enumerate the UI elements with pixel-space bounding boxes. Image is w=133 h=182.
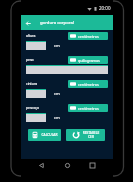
button[interactable]: centímetros <box>68 104 108 112</box>
button[interactable]: Home <box>62 160 73 171</box>
button[interactable]: Recents <box>87 160 98 171</box>
button[interactable]: quilogramas <box>68 56 108 64</box>
staticText: gordura corporal <box>40 20 74 26</box>
staticText: centímetros <box>78 82 99 87</box>
staticText: cm <box>54 91 60 96</box>
button[interactable]: centímetros <box>68 32 108 40</box>
button[interactable] <box>26 41 46 50</box>
button[interactable]: centímetros <box>68 80 108 88</box>
button[interactable] <box>26 65 108 74</box>
staticText: quilogramas <box>78 58 100 63</box>
button[interactable]: CALCULAR <box>28 129 61 141</box>
button[interactable]: Back <box>21 16 35 30</box>
button[interactable] <box>26 89 46 98</box>
button[interactable]: Back <box>36 160 47 171</box>
staticText: centímetros <box>78 34 99 39</box>
staticText: altura <box>26 33 36 38</box>
staticText: centímetros <box>78 106 99 111</box>
staticText: peso <box>26 57 34 62</box>
staticText: CALCULAR <box>41 133 58 137</box>
staticText: cm <box>54 115 60 120</box>
staticText: cm <box>54 43 60 48</box>
staticText: 20:00 <box>99 5 111 11</box>
staticText: pescoço <box>26 105 39 110</box>
staticText: cintura <box>26 81 38 86</box>
button[interactable] <box>26 113 46 122</box>
button[interactable]: RESTABELECER <box>66 129 105 141</box>
staticText: RESTABELECER <box>82 131 100 139</box>
